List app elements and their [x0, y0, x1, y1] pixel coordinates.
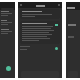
button[interactable]: [0, 11, 15, 16]
button[interactable]: [20, 9, 60, 19]
button[interactable]: [0, 20, 15, 25]
button[interactable]: Compose: [55, 47, 58, 50]
button[interactable]: [0, 29, 15, 34]
button[interactable]: New note: [6, 66, 11, 71]
button[interactable]: [20, 21, 60, 44]
